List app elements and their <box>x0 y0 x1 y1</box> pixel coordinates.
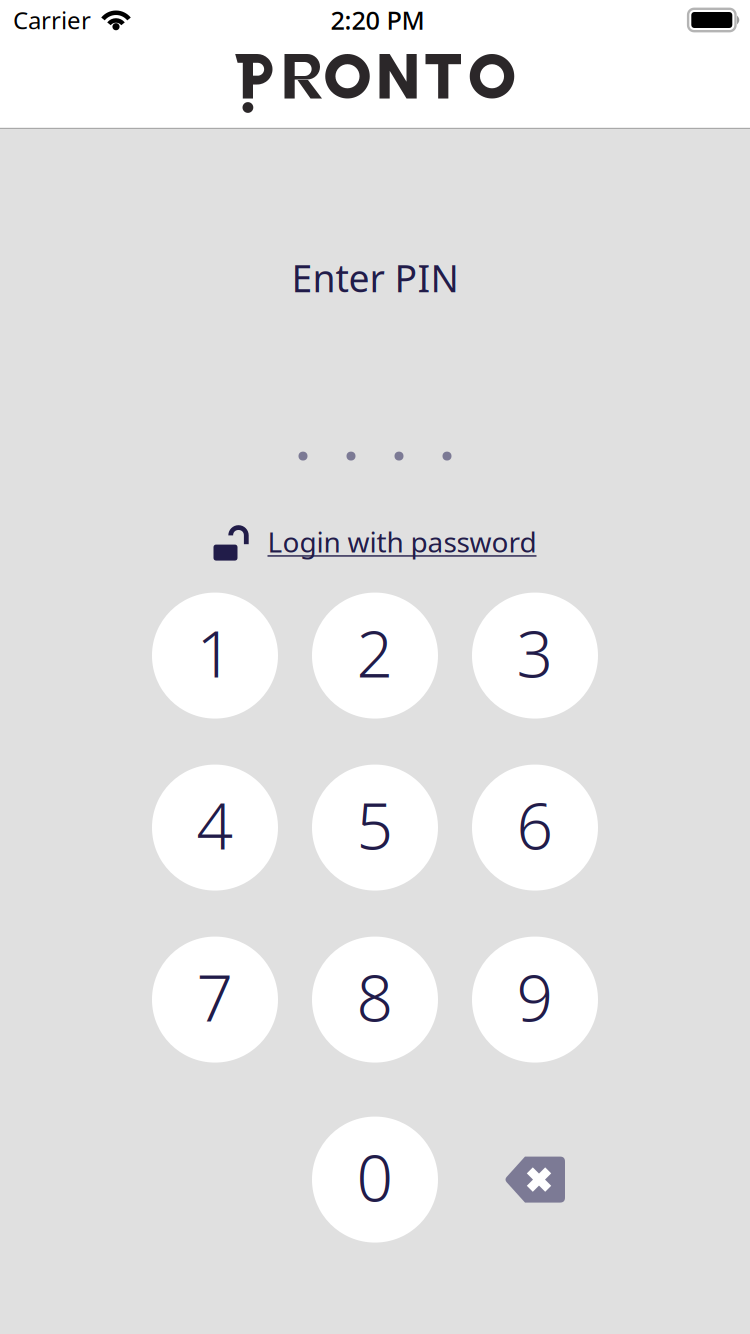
staticText: 3 <box>516 610 553 695</box>
staticText: Login with password <box>267 523 536 560</box>
staticText: 9 <box>516 954 553 1039</box>
staticText: Enter PIN <box>291 253 458 303</box>
staticText: 6 <box>516 782 553 867</box>
button[interactable]: 2 <box>312 593 438 719</box>
staticText: 5 <box>356 782 393 867</box>
button[interactable]: Login with password <box>213 523 536 561</box>
button[interactable]: 3 <box>472 593 598 719</box>
button[interactable]: Delete <box>472 1117 598 1243</box>
button[interactable]: 1 <box>152 593 278 719</box>
staticText: 0 <box>356 1134 393 1219</box>
staticText: 4 <box>196 782 233 867</box>
staticText: 2:20 PM <box>330 3 424 37</box>
staticText: Carrier <box>13 4 91 36</box>
button[interactable]: 8 <box>312 937 438 1063</box>
staticText: 1 <box>196 610 233 695</box>
staticText: 7 <box>196 954 233 1039</box>
button[interactable]: 7 <box>152 937 278 1063</box>
button[interactable]: 0 <box>312 1117 438 1243</box>
staticText: 8 <box>356 954 393 1039</box>
button[interactable]: 9 <box>472 937 598 1063</box>
button[interactable]: 6 <box>472 765 598 891</box>
button[interactable]: 4 <box>152 765 278 891</box>
button[interactable]: 5 <box>312 765 438 891</box>
staticText: 2 <box>356 610 393 695</box>
